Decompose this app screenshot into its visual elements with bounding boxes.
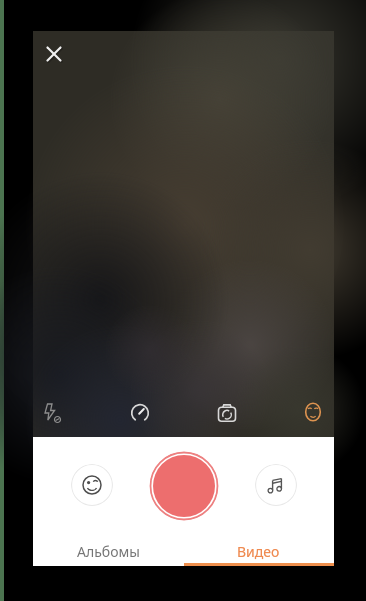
button[interactable] <box>255 464 297 506</box>
button[interactable] <box>71 464 113 506</box>
staticText: Видео <box>237 542 280 561</box>
button[interactable] <box>125 398 155 428</box>
button[interactable]: Альбомы <box>33 536 183 566</box>
button[interactable]: Видео <box>183 536 334 566</box>
staticText: Альбомы <box>77 542 140 561</box>
button[interactable] <box>149 451 219 521</box>
button[interactable] <box>35 397 65 427</box>
button[interactable] <box>298 396 328 428</box>
button[interactable] <box>40 40 68 68</box>
button[interactable] <box>211 397 243 429</box>
